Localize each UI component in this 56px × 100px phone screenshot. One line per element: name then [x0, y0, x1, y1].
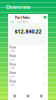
staticText: $12,840.22: [14, 28, 41, 35]
staticText: Row: [9, 54, 15, 58]
staticText: sub: [10, 75, 15, 78]
staticText: updated: [16, 20, 28, 23]
staticText: sub: [10, 66, 15, 70]
staticText: Overview: [6, 3, 30, 11]
staticText: Live: [9, 20, 14, 23]
staticText: Row: [9, 71, 15, 75]
staticText: Portfolio: [14, 15, 29, 20]
staticText: Row: [9, 46, 15, 49]
staticText: sub: [10, 58, 15, 61]
staticText: Row: [9, 63, 15, 66]
staticText: sub: [10, 49, 15, 53]
staticText: sub: [10, 83, 15, 87]
staticText: Row: [9, 80, 15, 83]
